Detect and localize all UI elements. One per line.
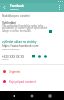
staticText: Urgentní (9, 70, 21, 74)
staticText: webová stránka (2, 48, 20, 51)
staticText: mobil (2, 58, 9, 61)
button[interactable]: Home (28, 92, 36, 100)
button[interactable]: Video call (36, 53, 42, 59)
staticText: services (10, 8, 19, 11)
button[interactable]: Back (10, 92, 18, 100)
staticText: Facebook (10, 4, 24, 8)
button[interactable]: Call (42, 53, 48, 59)
button[interactable]: Urgentní (0, 67, 64, 76)
button[interactable]: Back (1, 4, 8, 11)
button[interactable]: More options (56, 4, 63, 11)
staticText: Vyhledání (2, 21, 17, 25)
button[interactable]: Message (30, 53, 36, 59)
button[interactable]: Copy (48, 29, 53, 34)
staticText: https://www.facebook.com (2, 44, 39, 48)
button[interactable]: Koje případ oznámit (0, 77, 64, 86)
staticText: +420 XXX XX XX (2, 55, 25, 59)
staticText: Koje případ oznámit (9, 80, 36, 84)
staticText: Nabídka pro ostatní (2, 14, 30, 18)
button[interactable]: Recent apps (46, 92, 54, 100)
staticText: vyhledat odkaz na stránky (2, 40, 37, 44)
staticText: Pro vyhledání kontaktu nebo jeho přihláš… (2, 24, 51, 33)
